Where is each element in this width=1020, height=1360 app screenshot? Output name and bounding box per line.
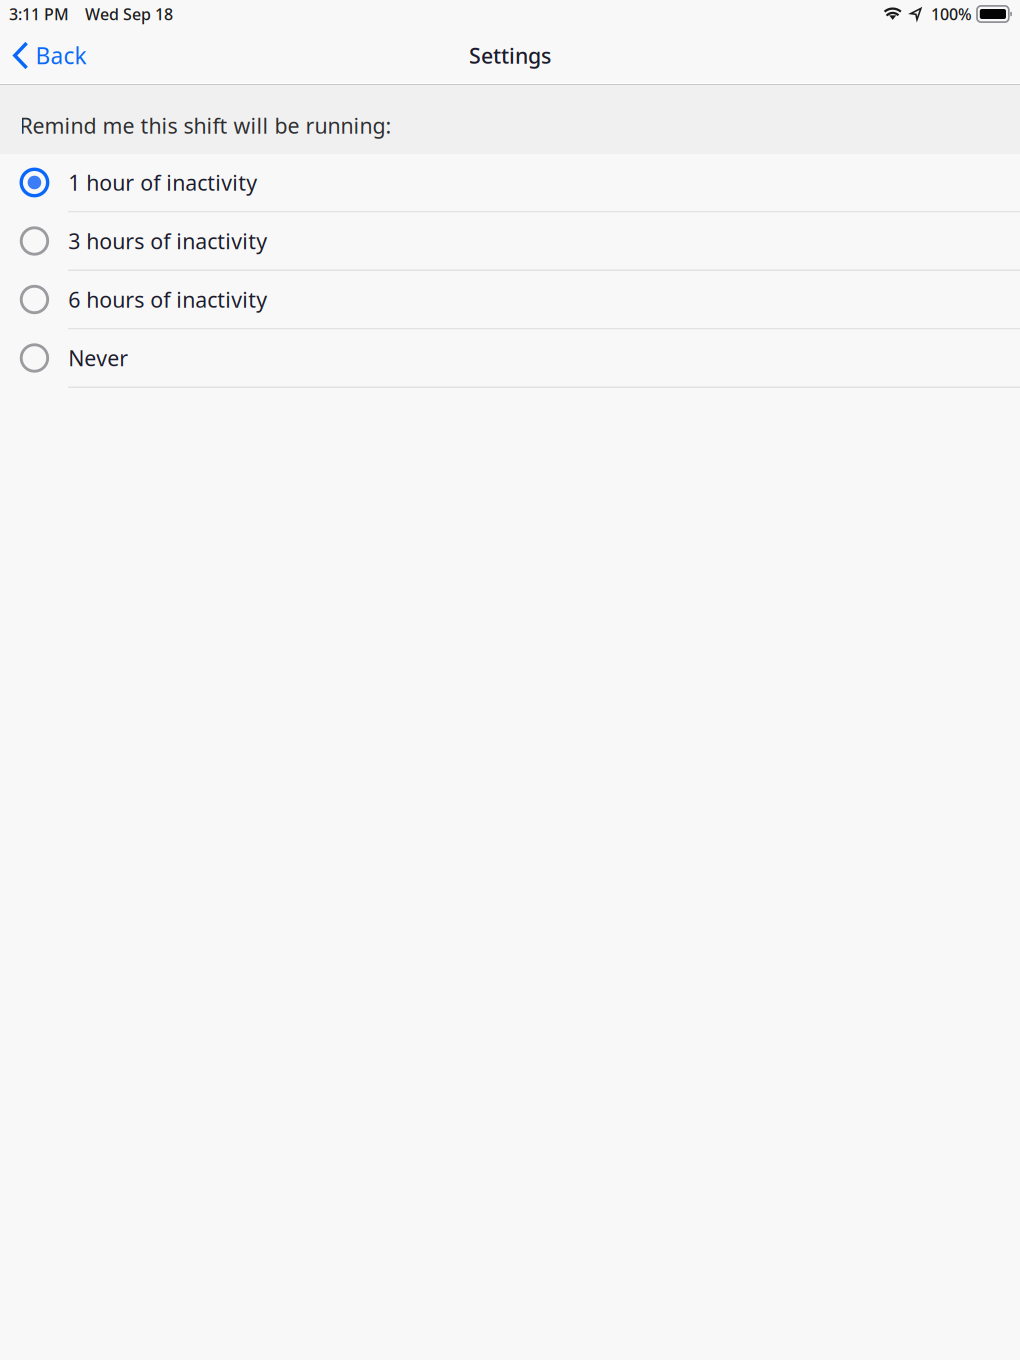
staticText: 3 hours of inactivity [68, 227, 267, 255]
staticText: 6 hours of inactivity [68, 285, 267, 314]
button[interactable]: 1 hour of inactivity [0, 154, 1020, 212]
button[interactable]: 3 hours of inactivity [0, 212, 1020, 271]
staticText: Remind me this shift will be running: [19, 111, 391, 140]
staticText: 100% [931, 3, 972, 25]
button[interactable]: 6 hours of inactivity [0, 271, 1020, 329]
staticText: Settings [469, 41, 551, 70]
staticText: 3:11 PM [9, 3, 69, 25]
staticText: 1 hour of inactivity [68, 168, 257, 197]
staticText: Never [68, 344, 128, 372]
staticText: Wed Sep 18 [85, 3, 173, 25]
staticText: Back [35, 40, 86, 70]
button[interactable]: Back [0, 28, 96, 83]
button[interactable]: Never [0, 329, 1020, 388]
